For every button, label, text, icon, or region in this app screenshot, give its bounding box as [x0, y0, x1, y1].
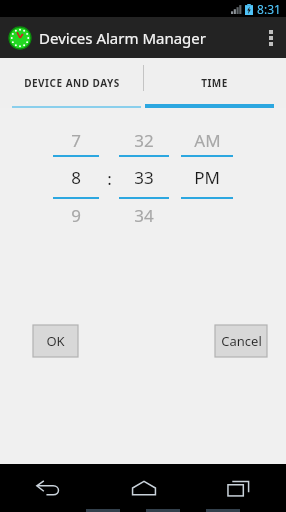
staticText: :	[107, 167, 112, 190]
staticText: 32	[134, 129, 154, 152]
staticText: 33	[134, 166, 154, 189]
staticText: AM	[194, 129, 221, 152]
button[interactable]: Home	[96, 464, 191, 512]
button[interactable]: Cancel	[215, 325, 267, 357]
staticText: Devices Alarm Manager	[39, 28, 206, 48]
button[interactable]: More options	[256, 17, 286, 58]
button[interactable]: Recent apps	[191, 464, 286, 512]
staticText: 34	[134, 204, 154, 227]
staticText: 8	[71, 166, 81, 189]
staticText: 7	[71, 129, 81, 152]
staticText: 9	[71, 204, 81, 227]
button[interactable]: DEVICE AND DAYS	[0, 58, 143, 108]
staticText: OK	[46, 332, 65, 350]
button[interactable]: TIME	[143, 58, 286, 108]
button[interactable]: Back	[0, 464, 96, 512]
staticText: DEVICE AND DAYS	[24, 76, 120, 90]
staticText: Cancel	[221, 332, 262, 350]
button[interactable]: 7	[53, 126, 99, 231]
button[interactable]: OK	[33, 325, 78, 357]
staticText: 8:31	[257, 1, 281, 17]
button[interactable]: AM	[181, 126, 233, 231]
staticText: PM	[194, 166, 220, 189]
button[interactable]: 32	[119, 126, 169, 231]
staticText: TIME	[201, 76, 228, 90]
